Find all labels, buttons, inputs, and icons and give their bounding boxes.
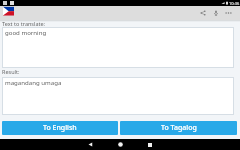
staticText: To English [43, 123, 77, 133]
button[interactable]: Back [75, 139, 105, 150]
staticText: 10:36 [229, 1, 240, 6]
button[interactable]: Speak [209, 6, 222, 20]
button[interactable]: magandang umaga [2, 77, 234, 115]
button[interactable]: To Tagalog [120, 121, 237, 135]
staticText: Result: [2, 68, 20, 75]
staticText: Text to translate: [2, 20, 46, 27]
staticText: good morning [5, 28, 47, 36]
button[interactable]: More options [222, 6, 235, 20]
button[interactable]: Home [105, 139, 135, 150]
staticText: To Tagalog [161, 123, 197, 133]
button[interactable]: Recent apps [135, 139, 165, 150]
button[interactable]: To English [2, 121, 118, 135]
button[interactable]: Share [196, 6, 209, 20]
button[interactable]: good morning [2, 27, 234, 68]
staticText: magandang umaga [5, 78, 62, 86]
